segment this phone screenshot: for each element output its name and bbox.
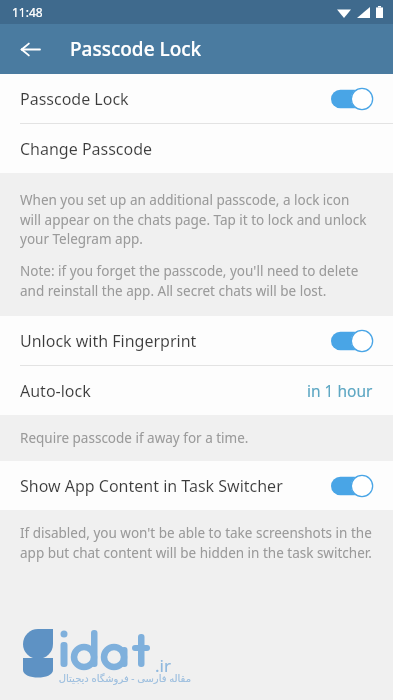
- button[interactable]: Auto-lock: [0, 366, 393, 415]
- staticText: in 1 hour: [307, 380, 373, 401]
- staticText: Passcode Lock: [20, 88, 331, 110]
- button[interactable]: Unlock with Fingerprint: [0, 316, 393, 365]
- staticText: If disabled, you won't be able to take s…: [20, 524, 373, 562]
- staticText: When you set up an additional passcode, …: [20, 191, 373, 248]
- button[interactable]: Back: [8, 27, 52, 71]
- button[interactable]: Show App Content in Task Switcher: [0, 461, 393, 510]
- staticText: Passcode Lock: [70, 36, 202, 62]
- staticText: Change Passcode: [20, 138, 373, 160]
- staticText: Unlock with Fingerprint: [20, 330, 331, 352]
- staticText: مقاله فارسی - فروشگاه دیجیتال: [58, 671, 191, 685]
- button[interactable]: Passcode Lock: [0, 74, 393, 123]
- staticText: Show App Content in Task Switcher: [20, 475, 331, 497]
- staticText: Require passcode if away for a time.: [20, 429, 249, 447]
- staticText: .ir: [155, 654, 171, 677]
- button[interactable]: Change Passcode: [0, 124, 393, 173]
- staticText: Auto-lock: [20, 380, 307, 402]
- staticText: 11:48: [12, 4, 43, 20]
- staticText: Note: if you forget the passcode, you'll…: [20, 262, 373, 300]
